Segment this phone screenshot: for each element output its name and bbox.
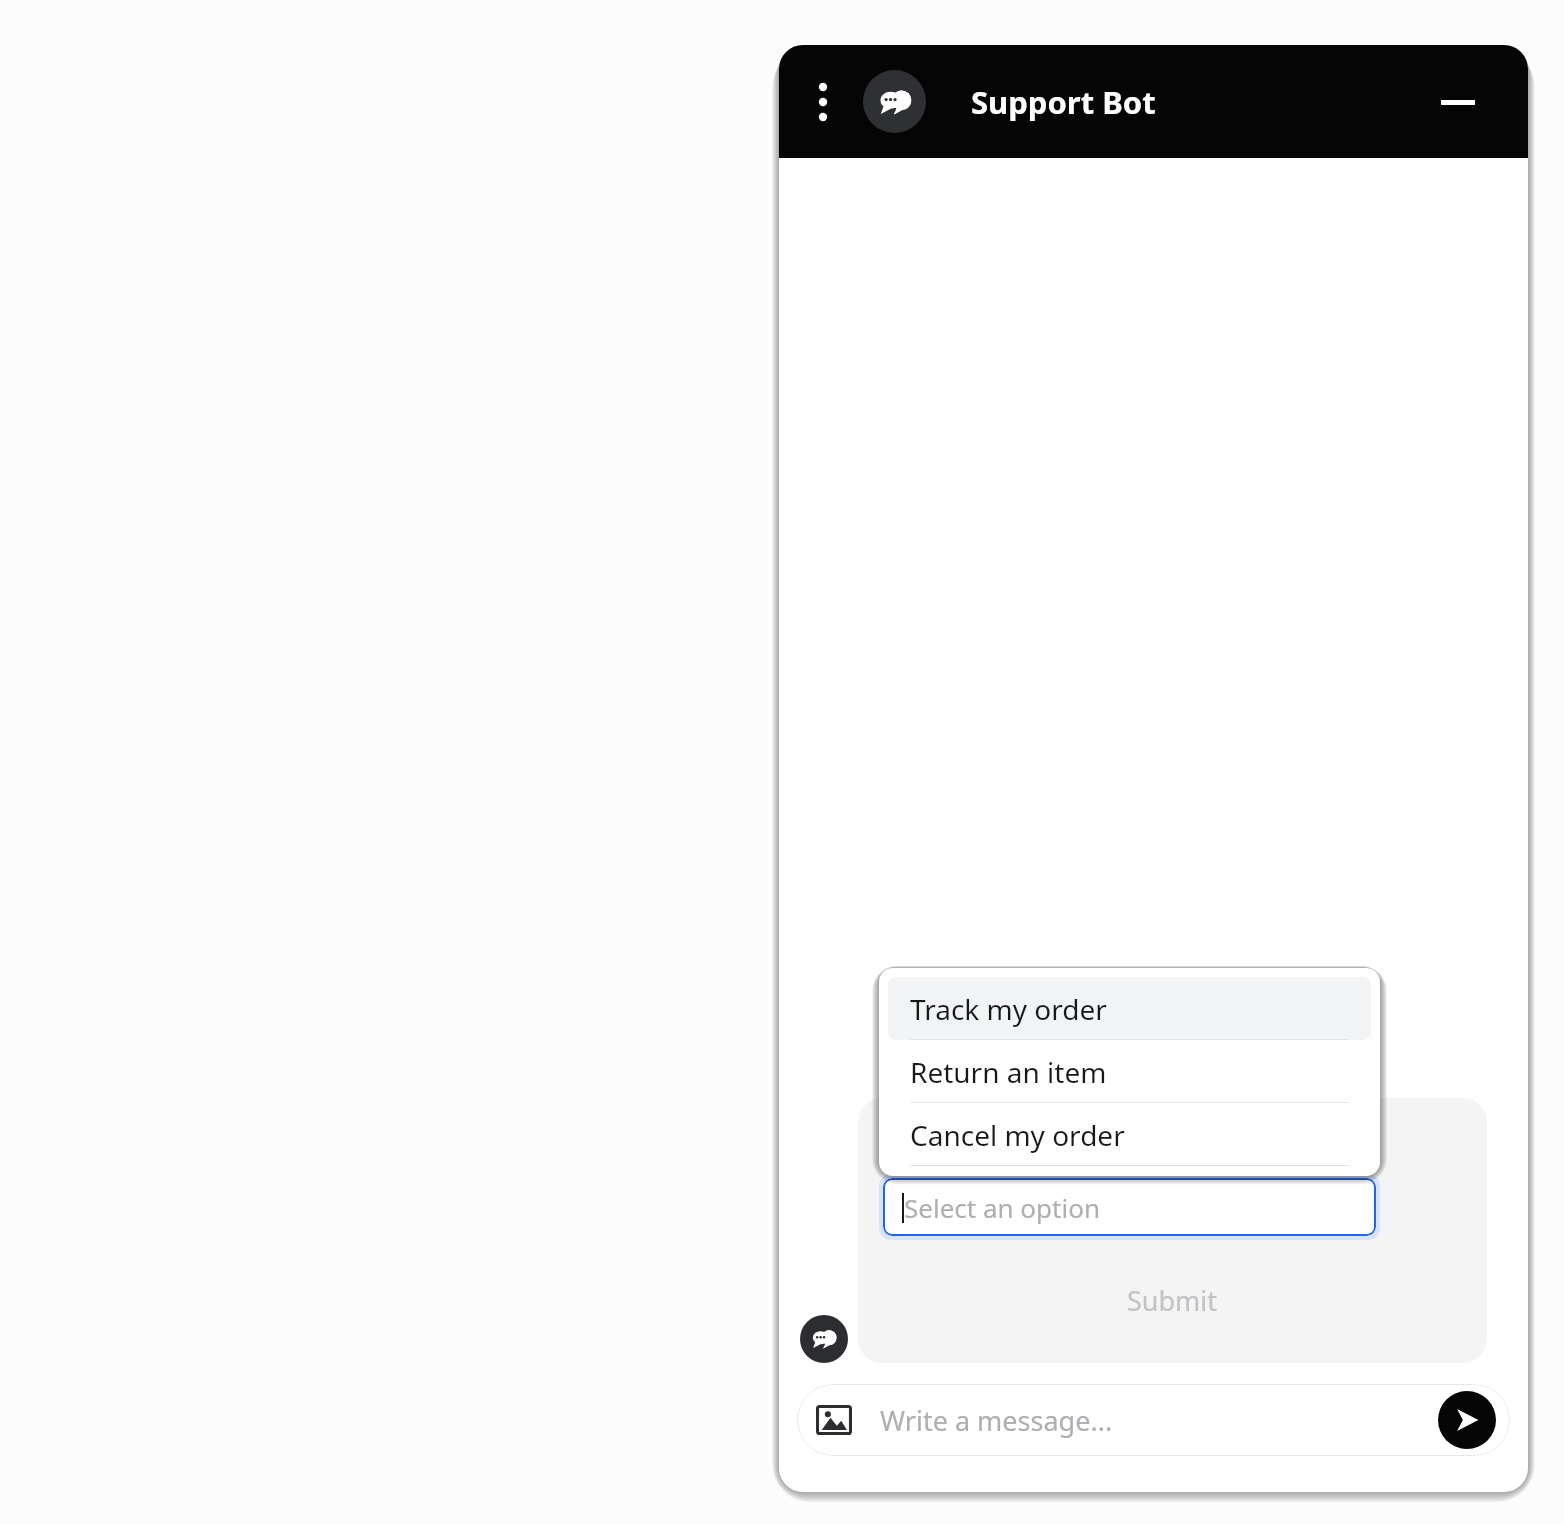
button[interactable]: Select an option [883, 1178, 1376, 1236]
button[interactable]: Attach image [812, 1398, 856, 1442]
button[interactable]: Send [1438, 1391, 1496, 1449]
button[interactable]: Submit [858, 1272, 1487, 1328]
button[interactable]: Minimize [1428, 72, 1488, 132]
staticText: Support Bot [971, 81, 1156, 123]
staticText: Submit [1127, 1282, 1218, 1319]
staticText: Track my order [910, 990, 1107, 1028]
button[interactable]: Attach image [797, 1384, 1510, 1456]
staticText: Return an item [910, 1053, 1107, 1091]
staticText: Cancel my order [910, 1116, 1125, 1154]
staticText: Write a message... [880, 1402, 1113, 1439]
button[interactable]: Cancel my order [888, 1103, 1371, 1166]
staticText: Select an option [904, 1190, 1100, 1225]
button[interactable]: Return an item [888, 1040, 1371, 1103]
button[interactable]: More options [801, 80, 845, 124]
button[interactable]: Track my order [888, 977, 1371, 1040]
